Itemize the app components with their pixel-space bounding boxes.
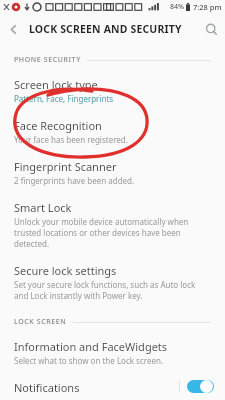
button[interactable]: Smart Lock [0,193,225,256]
button[interactable]: Fingerprint Scanner [0,152,225,193]
staticText: Notifications [14,380,80,393]
button[interactable]: Notifications toggle [187,380,214,393]
staticText: LOCK SCREEN [14,317,67,327]
button[interactable]: Face Recognition [0,111,225,152]
staticText: Fingerprint Scanner [14,159,117,174]
staticText: 84% [170,2,184,12]
button[interactable]: Secure lock settings [0,256,225,308]
button[interactable]: Screen lock type [0,70,225,111]
staticText: Screen lock type [14,77,98,92]
staticText: LOCK SCREEN AND SECURITY [29,22,182,36]
staticText: Unlock your mobile device automatically … [14,216,207,249]
staticText: 2 fingerprints have been added. [14,175,135,186]
staticText: Set your secure lock functions, such as … [14,279,207,301]
staticText: Information and FaceWidgets [14,339,168,354]
staticText: Select what to show on the Lock screen. [14,355,164,366]
button[interactable]: Information and FaceWidgets [0,332,225,373]
staticText: Smart Lock [14,200,72,215]
staticText: Pattern, Face, Fingerprints [14,93,114,104]
button[interactable]: Search [197,15,225,43]
button[interactable]: Notifications [0,373,225,400]
staticText: Secure lock settings [14,263,117,278]
staticText: Face Recognition [14,118,102,133]
staticText: PHONE SECURITY [14,55,81,65]
staticText: Your face has been registered. [14,134,128,145]
staticText: 7:28 pm [193,2,222,12]
button[interactable]: Back [0,16,26,42]
